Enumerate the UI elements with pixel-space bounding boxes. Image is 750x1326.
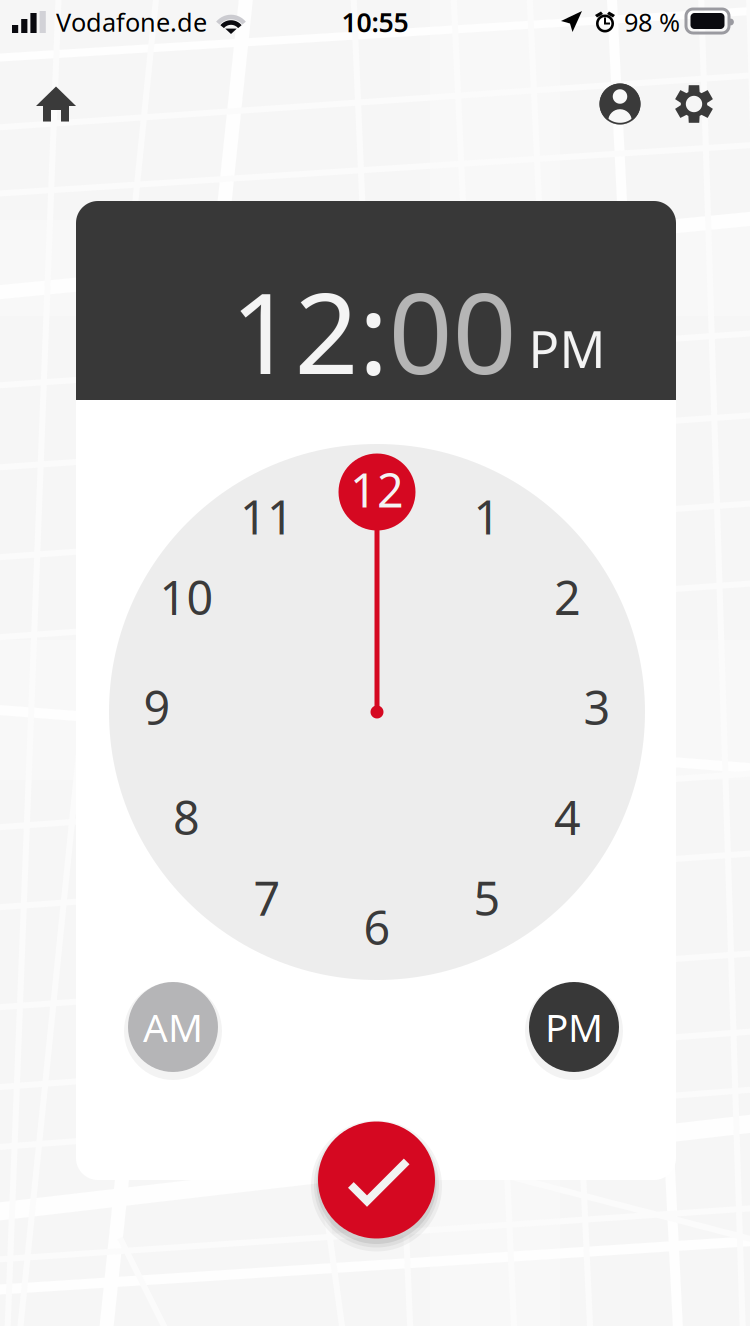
staticText: 8 bbox=[173, 786, 200, 848]
staticText: Vodafone.de bbox=[56, 5, 207, 39]
staticText: 3 bbox=[583, 676, 610, 738]
staticText: 1 bbox=[473, 485, 500, 547]
button[interactable]: PM bbox=[529, 982, 619, 1072]
staticText: 6 bbox=[363, 896, 390, 958]
staticText: 00 bbox=[388, 256, 516, 405]
staticText: 2 bbox=[554, 566, 581, 628]
button[interactable]: Confirm bbox=[318, 1121, 435, 1238]
button[interactable]: Home bbox=[18, 66, 94, 142]
staticText: 12 bbox=[350, 458, 404, 520]
staticText: 9 bbox=[143, 676, 170, 738]
button[interactable]: AM bbox=[128, 982, 218, 1072]
staticText: AM bbox=[143, 1001, 203, 1053]
staticText: 7 bbox=[253, 866, 280, 928]
staticText: 11 bbox=[240, 485, 294, 547]
button[interactable]: Account bbox=[582, 66, 658, 142]
staticText: 10 bbox=[159, 566, 213, 628]
staticText: 12: bbox=[230, 256, 388, 405]
staticText: 4 bbox=[554, 786, 581, 848]
staticText: 10:55 bbox=[341, 4, 408, 40]
staticText: 98 % bbox=[624, 5, 680, 39]
staticText: 5 bbox=[473, 866, 500, 928]
staticText: PM bbox=[545, 1001, 603, 1053]
staticText: PM bbox=[528, 315, 605, 382]
button[interactable]: Settings bbox=[656, 66, 732, 142]
